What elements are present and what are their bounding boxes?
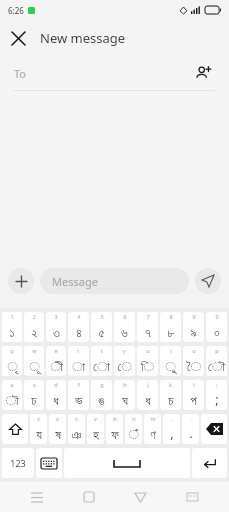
button[interactable]: k <box>160 380 181 410</box>
button[interactable]: u <box>137 346 158 376</box>
button[interactable]: 3 <box>46 312 66 342</box>
staticText: ৯ <box>190 327 197 340</box>
button[interactable]: m <box>144 414 161 444</box>
button[interactable]: Shift <box>2 414 28 444</box>
button[interactable]: ; <box>206 380 227 410</box>
button[interactable]: Home <box>74 482 104 512</box>
staticText: h <box>123 381 127 388</box>
staticText: p <box>215 347 219 354</box>
staticText: e <box>54 347 58 354</box>
staticText: q <box>10 347 14 354</box>
staticText: o <box>192 347 196 354</box>
staticText: ; <box>215 390 219 408</box>
staticText: d <box>54 381 58 388</box>
staticText: ি <box>141 361 154 374</box>
button[interactable]: 1 <box>2 312 22 342</box>
staticText: a <box>10 381 14 388</box>
button[interactable]: Backspace <box>201 414 227 444</box>
button[interactable]: 7 <box>137 312 158 342</box>
staticText: ৃ <box>7 361 18 374</box>
staticText: t <box>101 347 103 354</box>
staticText: 6 <box>123 313 127 320</box>
button[interactable]: d <box>46 380 66 410</box>
button[interactable]: Keyboard active <box>177 482 207 512</box>
button[interactable]: Add attachment <box>8 268 34 294</box>
button[interactable]: 6 <box>114 312 135 342</box>
button[interactable]: s <box>24 380 44 410</box>
staticText: ভ <box>75 395 83 408</box>
button[interactable]: Back <box>125 482 155 512</box>
staticText: ঙ <box>98 395 105 408</box>
button[interactable]: 123 <box>2 448 34 478</box>
staticText: ; <box>216 381 218 388</box>
button[interactable]: b <box>106 414 123 444</box>
button[interactable]: e <box>46 346 66 376</box>
staticText: ণ <box>150 429 156 442</box>
button[interactable]: j <box>137 380 158 410</box>
staticText: To <box>14 66 27 81</box>
button[interactable]: f <box>68 380 89 410</box>
button[interactable]: c <box>68 414 85 444</box>
button[interactable]: Send <box>195 268 221 294</box>
staticText: ৌ <box>208 361 225 374</box>
button[interactable]: l <box>183 380 204 410</box>
button[interactable]: z <box>30 414 47 444</box>
staticText: ১ <box>9 327 15 340</box>
button[interactable]: 4 <box>68 312 89 342</box>
button[interactable]: w <box>24 346 44 376</box>
button[interactable]: y <box>114 346 135 376</box>
button[interactable]: 9 <box>183 312 204 342</box>
staticText: 3 <box>54 313 58 320</box>
staticText: য <box>36 429 42 442</box>
button[interactable]: Close <box>0 20 36 56</box>
button[interactable]: g <box>91 380 112 410</box>
staticText: প <box>190 395 197 408</box>
staticText: g <box>100 381 104 388</box>
button[interactable]: Space <box>64 448 190 478</box>
staticText: ী <box>50 361 63 374</box>
button[interactable]: v <box>87 414 104 444</box>
staticText: ধ <box>145 395 151 408</box>
staticText: ফ <box>111 429 119 442</box>
button[interactable]: Message <box>40 268 189 294</box>
staticText: ঞ <box>71 429 82 442</box>
staticText: ৈ <box>187 361 201 374</box>
button[interactable]: i <box>160 346 181 376</box>
staticText: Message <box>52 274 98 289</box>
button[interactable]: Enter <box>192 448 227 478</box>
staticText: v <box>94 415 97 422</box>
staticText: r <box>77 347 80 354</box>
staticText: m <box>150 415 156 422</box>
staticText: 0 <box>215 313 219 320</box>
button[interactable]: p <box>206 346 227 376</box>
button[interactable]: Add recipient <box>191 61 215 85</box>
button[interactable]: o <box>183 346 204 376</box>
staticText: 7 <box>146 313 150 320</box>
staticText: l <box>193 381 195 388</box>
staticText: ঘ <box>122 395 128 408</box>
button[interactable]: t <box>91 346 112 376</box>
staticText: y <box>123 347 126 354</box>
button[interactable]: x <box>49 414 66 444</box>
button[interactable]: a <box>2 380 22 410</box>
button[interactable]: 0 <box>206 312 227 342</box>
staticText: ঁ <box>128 429 139 442</box>
staticText: ৗ <box>5 395 19 408</box>
button[interactable]: Switch keyboard <box>36 448 62 478</box>
staticText: 1 <box>10 313 14 320</box>
staticText: 5 <box>100 313 104 320</box>
button[interactable]: Recents <box>22 482 52 512</box>
button[interactable]: q <box>2 346 22 376</box>
staticText: ২ <box>31 327 38 340</box>
button[interactable]: r <box>68 346 89 376</box>
button[interactable]: , <box>163 414 180 444</box>
button[interactable]: h <box>114 380 135 410</box>
button[interactable]: 5 <box>91 312 112 342</box>
staticText: . <box>190 415 192 422</box>
button[interactable]: 2 <box>24 312 44 342</box>
staticText: ঢ <box>31 395 37 408</box>
button[interactable]: n <box>125 414 142 444</box>
button[interactable]: 8 <box>160 312 181 342</box>
staticText: ৭ <box>145 327 151 340</box>
button[interactable]: . <box>182 414 199 444</box>
